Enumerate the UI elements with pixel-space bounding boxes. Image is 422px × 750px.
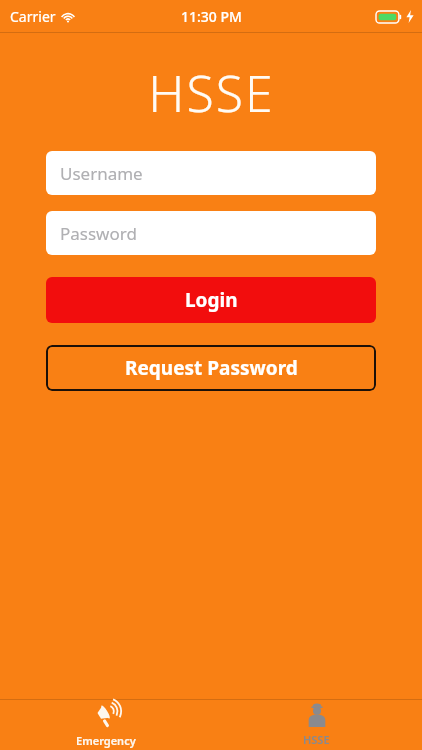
button[interactable]: Login (46, 277, 376, 323)
staticText: Password (60, 222, 137, 245)
button[interactable]: Password (46, 211, 376, 255)
staticText: Login (185, 287, 238, 313)
staticText: HSSE (303, 732, 330, 747)
staticText: Emergency (76, 733, 136, 748)
button[interactable]: Username (46, 151, 376, 195)
staticText: HSSE (148, 59, 275, 127)
staticText: 11:30 PM (181, 7, 242, 26)
button[interactable]: Request Password (46, 345, 376, 391)
button[interactable]: Emergency (0, 700, 211, 750)
staticText: Request Password (125, 355, 298, 381)
staticText: Carrier (10, 7, 56, 26)
button[interactable]: HSSE (211, 700, 422, 750)
staticText: Username (60, 162, 143, 185)
